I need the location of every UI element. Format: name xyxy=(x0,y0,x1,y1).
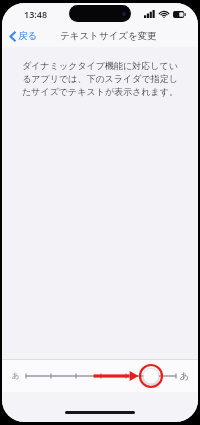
staticText: 戻る xyxy=(18,30,38,42)
button[interactable]: Text size slider xyxy=(26,363,176,389)
staticText: あ xyxy=(180,370,190,381)
button[interactable]: Back xyxy=(2,27,44,45)
staticText: あ xyxy=(12,371,20,380)
staticText: テキストサイズを変更 xyxy=(60,30,157,42)
staticText: 13:48 xyxy=(24,8,48,20)
staticText: ダイナミックタイプ機能に対応しているアプリでは、下のスライダで指定したサイズでテ… xyxy=(18,60,182,98)
other: Back xyxy=(10,31,16,42)
